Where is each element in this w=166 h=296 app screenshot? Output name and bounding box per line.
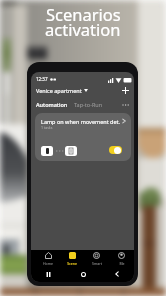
- staticText: 12:37: [36, 76, 48, 82]
- button[interactable]: Smart: [84, 252, 109, 267]
- staticText: Home: [43, 261, 53, 266]
- staticText: Scene: [67, 261, 77, 266]
- button[interactable]: Me: [109, 252, 134, 267]
- staticText: Smart: [92, 261, 102, 266]
- staticText: Venice apartment: [36, 87, 82, 94]
- button[interactable]: Automation: [36, 99, 68, 110]
- staticText: Lamp on when movement det.: [41, 118, 120, 125]
- staticText: activation: [45, 18, 121, 40]
- button[interactable]: More options: [120, 99, 131, 110]
- button[interactable]: Lamp on when movement det.: [35, 113, 131, 161]
- staticText: Me: [119, 261, 125, 266]
- button[interactable]: Scene: [60, 252, 84, 267]
- button[interactable]: Recent apps: [31, 267, 66, 281]
- button[interactable]: Add automation: [120, 85, 131, 96]
- button[interactable]: Home: [66, 267, 100, 281]
- button[interactable]: Home: [36, 252, 60, 267]
- staticText: Scenarios: [46, 3, 121, 25]
- button[interactable]: Venice apartment: [36, 85, 88, 96]
- button[interactable]: Back: [100, 267, 134, 281]
- button[interactable]: Enable automation: [109, 146, 122, 154]
- button[interactable]: Tap-to-Run: [74, 99, 103, 110]
- staticText: 1 tasks: [41, 125, 53, 130]
